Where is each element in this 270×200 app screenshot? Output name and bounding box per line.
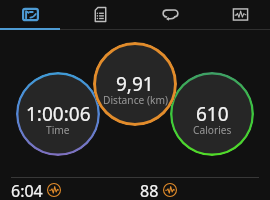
button[interactable]: Charts — [205, 0, 270, 28]
staticText: 1:00:06 — [26, 101, 91, 127]
staticText: 88 — [140, 180, 159, 200]
staticText: Time — [46, 123, 70, 137]
button[interactable]: Map — [0, 0, 65, 28]
button[interactable]: 88 — [140, 180, 177, 200]
staticText: Distance (km) — [103, 93, 168, 107]
button[interactable]: Laps — [135, 0, 205, 28]
staticText: 9,91 — [116, 71, 154, 97]
button[interactable]: 9,91 — [93, 42, 177, 126]
staticText: Calories — [193, 123, 232, 137]
button[interactable]: 6:04 — [11, 180, 61, 200]
button[interactable]: Summary — [65, 0, 135, 28]
button[interactable]: 610 — [170, 72, 254, 156]
staticText: 6:04 — [11, 180, 43, 200]
staticText: 610 — [196, 101, 229, 127]
button[interactable]: 1:00:06 — [16, 72, 100, 156]
